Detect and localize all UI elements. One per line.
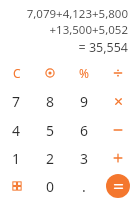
button[interactable]: 4 [0, 116, 33, 144]
staticText: 0 [46, 177, 55, 196]
button[interactable]: . [67, 172, 101, 200]
staticText: 5 [46, 121, 55, 140]
staticText: 4 [12, 121, 21, 140]
staticText: +13,500+5,052 [49, 22, 128, 38]
button[interactable]: 6 [67, 116, 101, 144]
staticText: 6 [80, 121, 89, 140]
button[interactable]: 8 [33, 87, 67, 116]
staticText: C [13, 65, 21, 81]
staticText: 3 [80, 149, 89, 168]
button[interactable]: 0 [33, 172, 67, 200]
staticText: = 35,554 [78, 39, 128, 56]
staticText: 8 [46, 92, 55, 111]
button[interactable]: 7 [0, 87, 33, 116]
button[interactable]: Multiply [101, 87, 135, 116]
staticText: 7,079+4,123+5,800 [26, 6, 128, 22]
staticText: % [79, 65, 89, 81]
button[interactable]: 3 [67, 144, 101, 172]
button[interactable]: 1 [0, 144, 33, 172]
button[interactable]: 5 [33, 116, 67, 144]
button[interactable]: Scientific functions [0, 172, 33, 200]
staticText: 1 [12, 149, 21, 168]
button[interactable]: 2 [33, 144, 67, 172]
button[interactable]: Clear [0, 58, 33, 87]
button[interactable]: Backspace [33, 58, 67, 87]
staticText: 2 [46, 149, 55, 168]
staticText: 9 [80, 92, 89, 111]
button[interactable]: Plus [101, 144, 135, 172]
button[interactable]: 9 [67, 87, 101, 116]
button[interactable]: Equals [101, 172, 135, 200]
button[interactable]: Minus [101, 116, 135, 144]
button[interactable]: Percent [67, 58, 101, 87]
button[interactable]: Divide [101, 58, 135, 87]
staticText: 7 [12, 92, 21, 111]
staticText: . [82, 177, 86, 196]
